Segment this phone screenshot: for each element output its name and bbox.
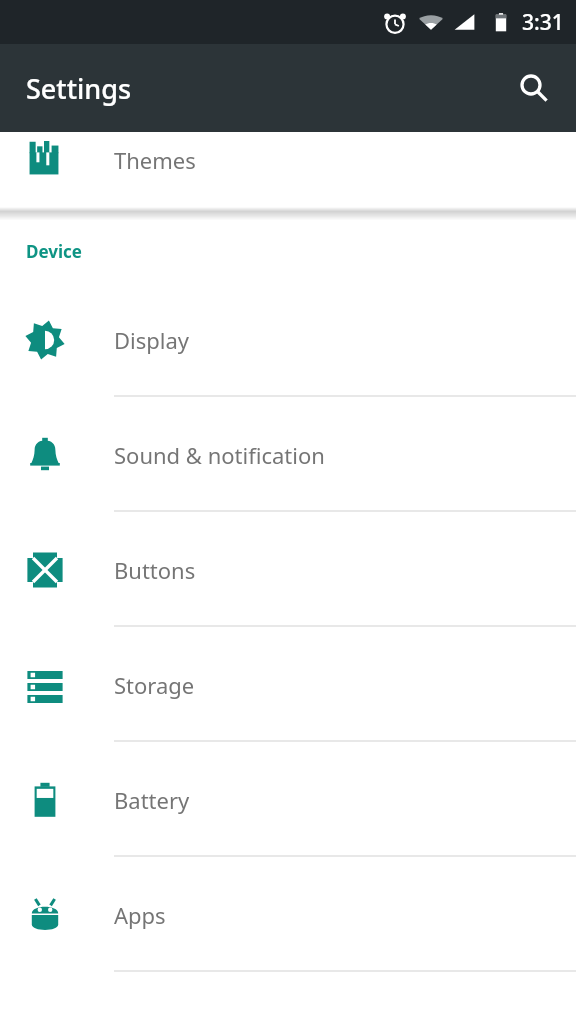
staticText: Display: [114, 325, 190, 355]
button[interactable]: Themes: [0, 132, 576, 207]
staticText: Buttons: [114, 555, 196, 585]
button[interactable]: Sound & notification: [0, 397, 576, 512]
staticText: Battery: [114, 785, 190, 815]
button[interactable]: Search: [506, 60, 562, 116]
button[interactable]: Display: [0, 282, 576, 397]
staticText: 3:31: [522, 8, 564, 37]
staticText: Settings: [26, 70, 132, 107]
staticText: Sound & notification: [114, 440, 325, 470]
staticText: Device: [26, 240, 82, 263]
staticText: Themes: [114, 145, 196, 175]
button[interactable]: Storage: [0, 627, 576, 742]
button[interactable]: Battery: [0, 742, 576, 857]
button[interactable]: Buttons: [0, 512, 576, 627]
staticText: Apps: [114, 900, 166, 930]
button[interactable]: Apps: [0, 857, 576, 972]
staticText: Storage: [114, 670, 195, 700]
